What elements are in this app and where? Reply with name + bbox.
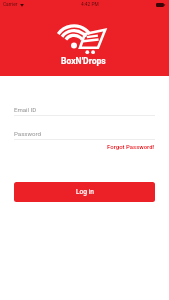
button[interactable]: Email ID [14, 106, 155, 116]
staticText: Carrier [3, 2, 18, 8]
staticText: Email ID [14, 106, 37, 113]
staticText: Log in [76, 188, 94, 196]
staticText: 4:42 PM [81, 2, 99, 8]
button[interactable]: Forgot Password! [107, 142, 155, 151]
button[interactable]: Password [14, 130, 155, 140]
staticText: Password [14, 130, 41, 137]
button[interactable]: Log in [14, 182, 155, 202]
staticText: Forgot Password! [107, 143, 155, 150]
staticText: BoxN'Drops [61, 56, 106, 66]
